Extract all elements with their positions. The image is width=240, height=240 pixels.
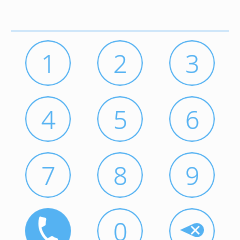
staticText: 9 xyxy=(185,158,200,192)
button[interactable]: 7 xyxy=(12,147,84,203)
staticText: 3 xyxy=(185,46,200,80)
button[interactable]: 4 xyxy=(12,91,84,147)
staticText: 2 xyxy=(113,46,128,80)
staticText: 0 xyxy=(113,214,128,240)
staticText: 8 xyxy=(113,158,128,192)
staticText: 1 xyxy=(41,46,56,80)
staticText: 5 xyxy=(113,102,128,136)
button[interactable]: 9 xyxy=(156,147,228,203)
button[interactable]: Backspace xyxy=(156,203,228,240)
button[interactable]: 1 xyxy=(12,35,84,91)
button[interactable]: 2 xyxy=(84,35,156,91)
button[interactable]: 6 xyxy=(156,91,228,147)
staticText: 7 xyxy=(41,158,56,192)
staticText: 6 xyxy=(185,102,200,136)
button[interactable]: 8 xyxy=(84,147,156,203)
button[interactable]: 3 xyxy=(156,35,228,91)
button[interactable]: 0 xyxy=(84,203,156,240)
button[interactable]: Call xyxy=(12,203,84,240)
staticText: 4 xyxy=(41,102,56,136)
button[interactable]: 5 xyxy=(84,91,156,147)
